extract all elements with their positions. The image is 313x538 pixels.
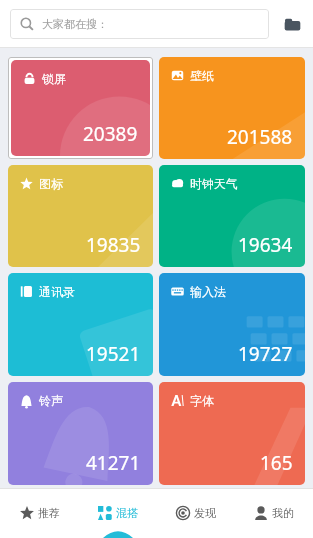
button[interactable]: 锁屏 <box>11 60 150 156</box>
button[interactable]: 图标 <box>8 165 153 267</box>
staticText: 19634 <box>238 232 293 258</box>
staticText: 壁纸 <box>190 68 214 83</box>
button[interactable]: 推荐 <box>0 488 79 538</box>
staticText: 锁屏 <box>42 71 66 86</box>
staticText: 20389 <box>83 121 138 147</box>
button[interactable]: 壁纸 <box>159 57 305 159</box>
button[interactable]: 我的 <box>235 488 313 538</box>
button[interactable]: 通讯录 <box>8 273 153 376</box>
button[interactable]: 铃声 <box>8 382 153 485</box>
button[interactable]: 输入法 <box>159 273 305 376</box>
staticText: 推荐 <box>38 506 60 520</box>
button[interactable]: My files <box>277 9 307 39</box>
staticText: 通讯录 <box>39 284 75 299</box>
staticText: 41271 <box>86 450 141 476</box>
staticText: 时钟天气 <box>190 176 238 191</box>
staticText: 混搭 <box>116 506 138 520</box>
button[interactable]: 发现 <box>157 488 235 538</box>
staticText: 19521 <box>86 341 141 367</box>
staticText: 201588 <box>227 124 293 150</box>
staticText: 发现 <box>194 506 216 520</box>
button[interactable]: 混搭 <box>79 488 157 538</box>
staticText: 19835 <box>86 232 141 258</box>
staticText: 我的 <box>272 506 294 520</box>
staticText: 字体 <box>190 393 214 408</box>
staticText: 大家都在搜： <box>42 17 108 31</box>
button[interactable]: 字体 <box>159 382 305 485</box>
staticText: 19727 <box>238 341 293 367</box>
staticText: 输入法 <box>190 284 226 299</box>
staticText: 图标 <box>39 176 63 191</box>
staticText: 铃声 <box>39 393 63 408</box>
staticText: 165 <box>260 450 293 476</box>
button[interactable]: 大家都在搜： <box>10 9 269 39</box>
button[interactable]: 时钟天气 <box>159 165 305 267</box>
